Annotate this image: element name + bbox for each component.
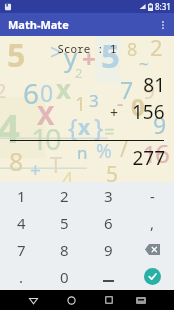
button[interactable]: Home [52, 290, 90, 310]
staticText: % [96, 138, 112, 164]
staticText: 9 [153, 109, 167, 140]
staticText: 6 [104, 213, 113, 233]
button[interactable]: 0 [43, 263, 86, 290]
staticText: 8 [9, 144, 24, 178]
button[interactable]: 8 [43, 236, 86, 263]
staticText: . [19, 267, 24, 287]
staticText: T [50, 151, 62, 180]
staticText: 4 [61, 164, 74, 194]
staticText: 4 [17, 213, 26, 233]
staticText: 9 [143, 77, 156, 106]
staticText: 8 [60, 240, 69, 260]
button[interactable]: Recents [90, 290, 128, 310]
staticText: > [50, 36, 63, 66]
staticText: 9 [104, 240, 113, 260]
staticText: 0 [60, 267, 69, 287]
button[interactable]: , [130, 209, 174, 236]
staticText: 0 [131, 90, 145, 123]
staticText: Score : 1 [0, 41, 174, 56]
staticText: 2 [0, 77, 7, 104]
staticText: ~ [139, 52, 149, 75]
button[interactable]: Hide keyboard [128, 290, 154, 310]
staticText: / [120, 135, 128, 164]
staticText: 4 [0, 100, 20, 154]
button[interactable]: Submit answer [130, 263, 174, 290]
staticText: 1 [75, 91, 86, 117]
staticText: 5 [7, 33, 26, 77]
staticText: 0 [40, 77, 54, 108]
staticText: + [30, 157, 41, 183]
button[interactable]: . [0, 263, 43, 290]
button[interactable]: 5 [43, 209, 86, 236]
staticText: 277 [0, 145, 165, 171]
staticText: - [117, 91, 124, 117]
staticText: 2 [150, 32, 163, 62]
staticText: x [56, 71, 72, 106]
button[interactable]: 1 [0, 182, 43, 209]
staticText: x [78, 113, 91, 142]
staticText: 2 [60, 186, 69, 206]
button[interactable]: - [130, 182, 174, 209]
button[interactable]: 4 [0, 209, 43, 236]
staticText: 5 [101, 33, 120, 78]
staticText: 1 [31, 119, 48, 158]
staticText: , [150, 213, 155, 233]
staticText: n [77, 141, 88, 164]
button[interactable]: 7 [0, 236, 43, 263]
staticText: } [94, 110, 104, 144]
button[interactable]: Space [86, 263, 130, 290]
staticText: X [37, 97, 55, 132]
staticText: 5 [60, 213, 69, 233]
staticText: Math-Mate [8, 17, 69, 32]
staticText: = [104, 119, 115, 145]
staticText: 0 [45, 119, 62, 158]
staticText: 5 [106, 160, 119, 189]
button[interactable]: Back [14, 290, 52, 310]
staticText: 1 [17, 186, 26, 206]
button[interactable]: 9 [86, 236, 130, 263]
staticText: y [64, 39, 78, 74]
staticText: - [150, 186, 155, 206]
staticText: 6 [155, 135, 170, 170]
staticText: + [110, 103, 119, 122]
staticText: 7 [120, 74, 134, 105]
button[interactable]: 2 [43, 182, 86, 209]
staticText: 1 [143, 138, 157, 169]
staticText: + [82, 42, 96, 75]
staticText: 2 [75, 64, 83, 82]
staticText: 7 [17, 240, 26, 260]
staticText: 8 [127, 37, 138, 62]
staticText: 156 [132, 99, 165, 125]
staticText: { [68, 110, 78, 144]
staticText: 81 [0, 72, 165, 98]
button[interactable]: 6 [86, 209, 130, 236]
staticText: 3 [89, 89, 99, 112]
staticText: 6 [23, 74, 40, 112]
button[interactable]: Backspace [130, 236, 174, 263]
button[interactable]: 3 [86, 182, 130, 209]
staticText: 8:31 [155, 1, 171, 12]
button[interactable]: More options [152, 14, 174, 36]
staticText: 3 [104, 186, 113, 206]
